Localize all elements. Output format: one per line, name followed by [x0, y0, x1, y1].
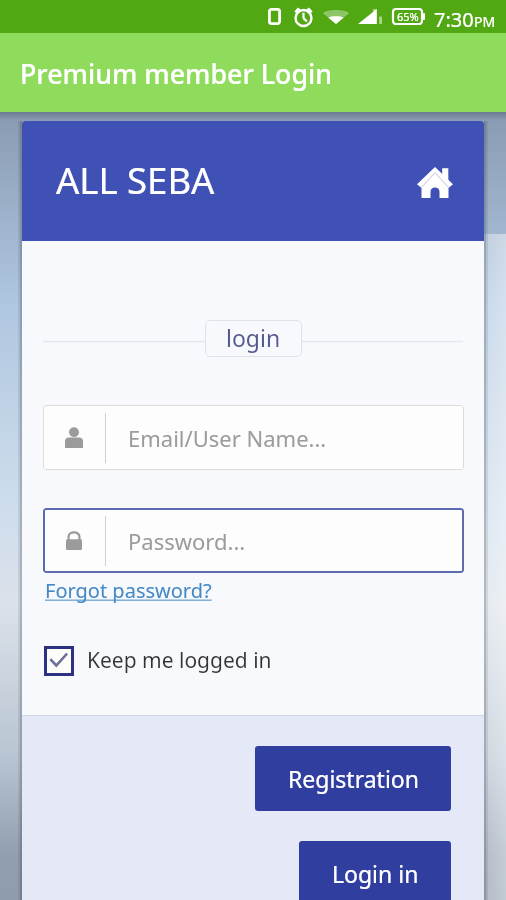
button[interactable]: login — [205, 320, 302, 357]
button[interactable]: Forgot password? — [45, 577, 212, 604]
staticText: 7:30 — [434, 6, 474, 33]
staticText: Login in — [332, 858, 419, 889]
staticText: Email/User Name... — [128, 423, 327, 453]
staticText: 65% — [397, 9, 419, 24]
staticText: ALL SEBA — [56, 155, 215, 205]
staticText: Keep me logged in — [87, 646, 272, 675]
button[interactable]: Registration — [255, 746, 451, 811]
staticText: Password... — [128, 526, 246, 556]
staticText: Registration — [288, 763, 419, 794]
button[interactable]: Keep me logged in — [44, 646, 272, 676]
button[interactable]: Login in — [299, 841, 451, 900]
staticText: PM — [474, 12, 496, 31]
button[interactable]: Password... — [43, 508, 464, 573]
staticText: login — [226, 322, 281, 353]
button[interactable]: Email/User Name... — [43, 405, 464, 470]
staticText: Forgot password? — [45, 577, 212, 604]
staticText: Premium member Login — [20, 55, 333, 92]
button[interactable]: Home — [412, 158, 458, 204]
